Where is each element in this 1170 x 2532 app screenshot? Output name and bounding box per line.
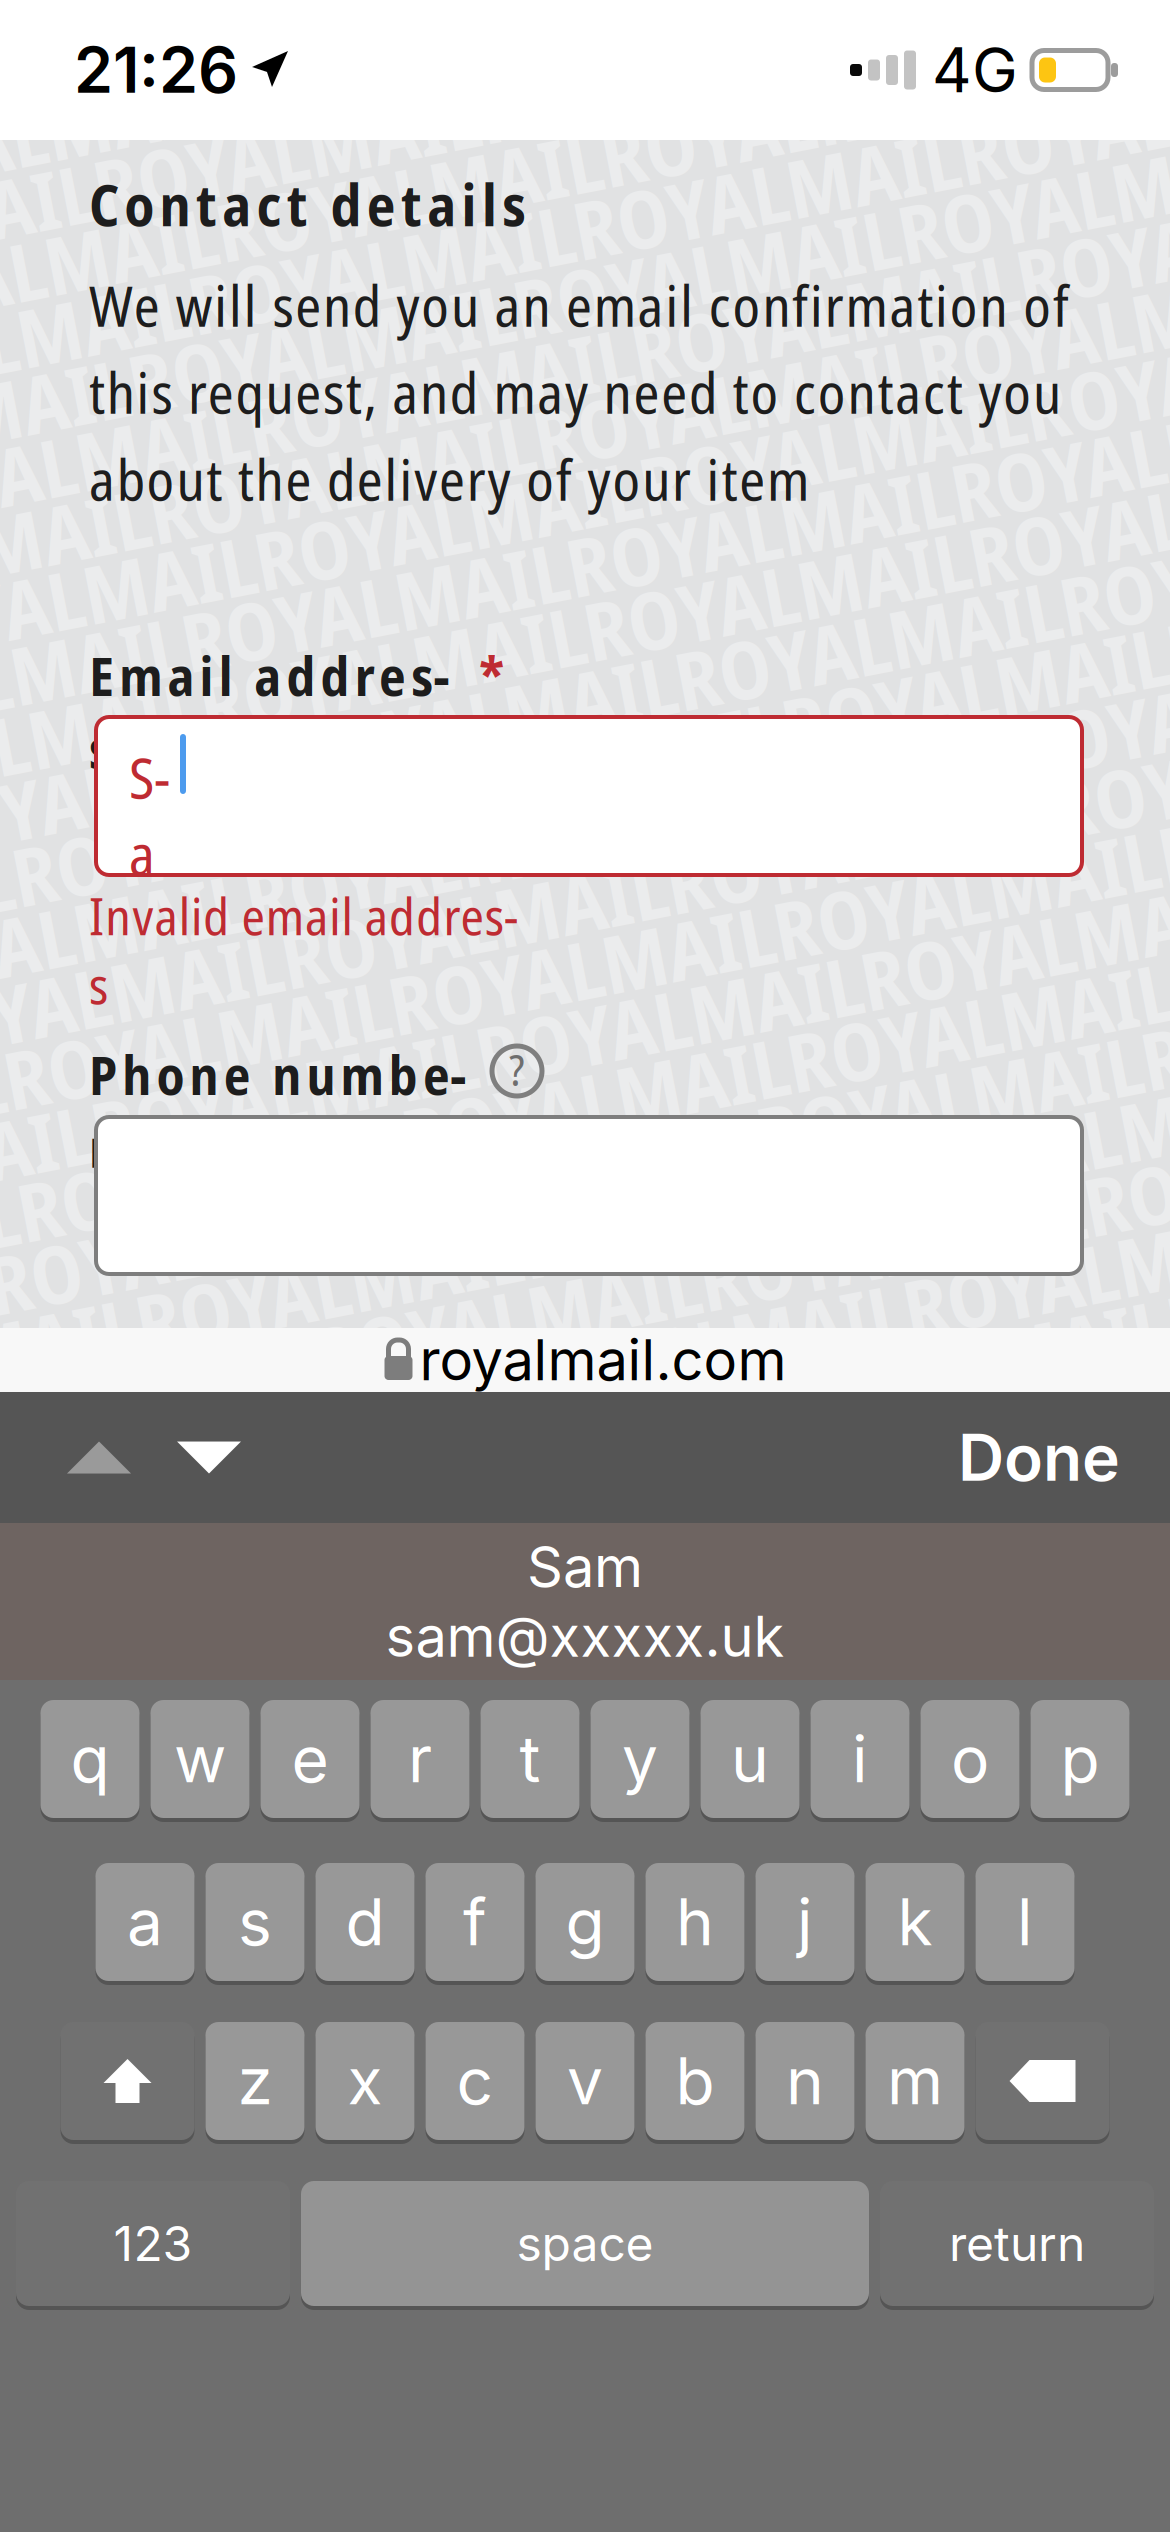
button[interactable]: r <box>370 1698 469 1820</box>
staticText: r <box>408 1720 432 1798</box>
button[interactable]: e <box>260 1698 359 1820</box>
staticText: 4G <box>932 33 1018 107</box>
staticText: Email address <box>89 639 460 712</box>
staticText: o <box>951 1720 989 1798</box>
button[interactable]: o <box>920 1698 1019 1820</box>
button[interactable]: q <box>40 1698 139 1820</box>
staticText: ROYALMAILROYALMAILROYALMAILROYALMAILROYA… <box>0 577 1170 686</box>
staticText: return <box>949 2214 1085 2273</box>
staticText: q <box>70 1720 109 1798</box>
staticText: Sa <box>129 739 181 815</box>
staticText: ROYALMAILROYALMAILROYALMAILROYALMAILROYA… <box>0 1369 1170 1478</box>
staticText: ROYALMAILROYALMAILROYALMAILROYALMAILROYA… <box>0 973 1170 1082</box>
staticText: ROYALMAILROYALMAILROYALMAILROYALMAILROYA… <box>0 709 1170 818</box>
staticText: b <box>675 2042 714 2120</box>
button[interactable]: g <box>535 1861 634 1983</box>
staticText: ROYALMAILROYALMAILROYALMAILROYALMAILROYA… <box>0 445 1170 554</box>
staticText: a <box>127 1883 163 1961</box>
staticText: ROYALMAILROYALMAILROYALMAILROYALMAILROYA… <box>0 0 1170 92</box>
staticText: m <box>887 2042 943 2120</box>
button[interactable]: return <box>880 2179 1154 2308</box>
button[interactable]: u <box>700 1698 799 1820</box>
staticText: w <box>174 1720 226 1798</box>
button[interactable]: t <box>480 1698 579 1820</box>
staticText: ROYALMAILROYALMAILROYALMAILROYALMAILROYA… <box>0 841 1170 950</box>
staticText: ROYALMAILROYALMAILROYALMAILROYALMAILROYA… <box>0 181 1170 290</box>
button[interactable]: n <box>755 2020 854 2142</box>
staticText: y <box>622 1720 658 1798</box>
button[interactable]: Shift <box>60 2020 194 2142</box>
staticText: ROYALMAILROYALMAILROYALMAILROYALMAILROYA… <box>0 1237 1170 1346</box>
button[interactable]: v <box>535 2020 634 2142</box>
button[interactable]: c <box>425 2020 524 2142</box>
staticText: j <box>797 1883 813 1961</box>
staticText: ROYALMAILROYALMAILROYALMAILROYALMAILROYA… <box>0 247 1170 356</box>
button[interactable]: p <box>1030 1698 1129 1820</box>
staticText: Contact details <box>89 165 526 243</box>
button[interactable]: Done <box>958 1392 1170 1523</box>
staticText: ROYALMAILROYALMAILROYALMAILROYALMAILROYA… <box>0 115 1170 224</box>
staticText: Sam <box>527 1533 643 1600</box>
staticText: ROYALMAILROYALMAILROYALMAILROYALMAILROYA… <box>0 1039 1170 1148</box>
staticText: p <box>1060 1720 1099 1798</box>
staticText: about the delivery of your item <box>89 441 809 517</box>
staticText: c <box>456 2042 493 2120</box>
staticText: sam@xxxxx.uk <box>385 1602 784 1670</box>
staticText: ROYALMAILROYALMAILROYALMAILROYALMAILROYA… <box>0 511 1170 620</box>
button[interactable]: space <box>301 2179 869 2308</box>
staticText: t <box>519 1720 540 1798</box>
staticText: ROYALMAILROYALMAILROYALMAILROYALMAILROYA… <box>0 907 1170 1016</box>
staticText: We will send you an email confirmation o… <box>89 267 1069 343</box>
staticText: l <box>1017 1883 1033 1961</box>
button[interactable]: 123 <box>16 2179 290 2308</box>
button[interactable]: s <box>205 1861 304 1983</box>
staticText: k <box>897 1883 932 1961</box>
button[interactable]: m <box>865 2020 964 2142</box>
button[interactable]: d <box>315 1861 414 1983</box>
staticText: f <box>463 1883 487 1961</box>
staticText: ROYALMAILROYALMAILROYALMAILROYALMAILROYA… <box>0 379 1170 488</box>
staticText: 21:26 <box>74 32 238 108</box>
staticText: this request, and may need to contact yo… <box>89 354 1061 430</box>
staticText: u <box>731 1720 769 1798</box>
staticText: h <box>676 1883 714 1961</box>
staticText: Done <box>958 1419 1120 1496</box>
staticText: g <box>565 1883 604 1961</box>
staticText: i <box>852 1720 868 1798</box>
button[interactable]: f <box>425 1861 524 1983</box>
staticText: x <box>347 2042 382 2120</box>
staticText: ROYALMAILROYALMAILROYALMAILROYALMAILROYA… <box>0 1171 1170 1280</box>
button[interactable]: l <box>975 1861 1074 1983</box>
button[interactable]: a <box>95 1861 194 1983</box>
staticText: ? <box>509 1039 525 1099</box>
staticText: ROYALMAILROYALMAILROYALMAILROYALMAILROYA… <box>0 643 1170 752</box>
button[interactable]: Delete <box>975 2020 1109 2142</box>
staticText: z <box>237 2042 272 2120</box>
button[interactable]: w <box>150 1698 249 1820</box>
button[interactable]: Next field <box>154 1392 264 1523</box>
staticText: ROYALMAILROYALMAILROYALMAILROYALMAILROYA… <box>0 1105 1170 1214</box>
button[interactable]: i <box>810 1698 909 1820</box>
button[interactable]: z <box>205 2020 304 2142</box>
button[interactable]: x <box>315 2020 414 2142</box>
button[interactable]: b <box>645 2020 744 2142</box>
staticText: ROYALMAILROYALMAILROYALMAILROYALMAILROYA… <box>0 775 1170 884</box>
staticText: d <box>345 1883 384 1961</box>
staticText: ROYALMAILROYALMAILROYALMAILROYALMAILROYA… <box>0 1303 1170 1412</box>
staticText: v <box>567 2042 603 2120</box>
staticText: e <box>291 1720 328 1798</box>
button[interactable]: y <box>590 1698 689 1820</box>
staticText: * <box>479 639 504 712</box>
staticText: s <box>238 1883 272 1961</box>
staticText: n <box>786 2042 824 2120</box>
button[interactable]: Previous field <box>44 1392 154 1523</box>
staticText: Invalid email address <box>89 881 524 950</box>
button[interactable]: h <box>645 1861 744 1983</box>
button[interactable]: k <box>865 1861 964 1983</box>
button[interactable]: j <box>755 1861 854 1983</box>
staticText: ROYALMAILROYALMAILROYALMAILROYALMAILROYA… <box>0 49 1170 158</box>
staticText: Phone number <box>89 1038 475 1111</box>
staticText: space <box>516 2214 653 2273</box>
staticText: 123 <box>113 2214 192 2273</box>
